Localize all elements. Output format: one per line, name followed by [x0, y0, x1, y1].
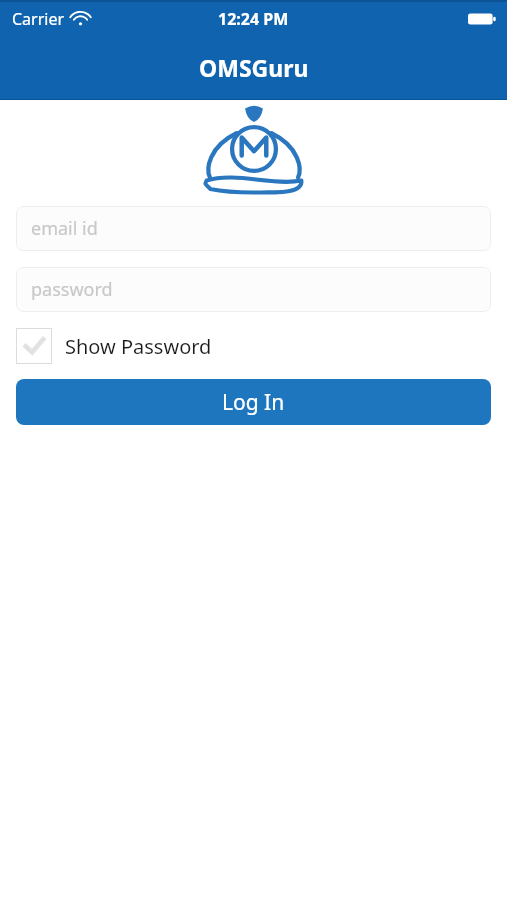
staticText: Log In [222, 388, 285, 417]
staticText: Show Password [65, 333, 212, 360]
button[interactable]: email id [16, 206, 491, 251]
button[interactable]: Log In [16, 379, 491, 425]
button[interactable]: password [16, 267, 491, 312]
staticText: email id [31, 216, 98, 241]
button[interactable]: Show Password [16, 325, 212, 367]
staticText: 12:24 PM [218, 8, 289, 30]
staticText: Carrier [12, 8, 65, 30]
staticText: OMSGuru [199, 52, 309, 83]
staticText: password [31, 277, 113, 302]
